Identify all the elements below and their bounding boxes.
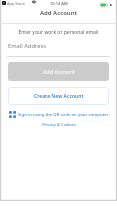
staticText: Create New Account bbox=[34, 93, 84, 100]
staticText: Sign in using the QR code on your comput… bbox=[18, 111, 109, 117]
button[interactable]: QR code sign-in bbox=[0, 109, 117, 119]
button[interactable]: Add Account bbox=[8, 62, 109, 81]
staticText: Email Address bbox=[8, 42, 47, 50]
button[interactable]: Create New Account bbox=[8, 87, 109, 105]
other: Wi-Fi bbox=[32, 1, 36, 4]
other: Battery bbox=[100, 3, 112, 7]
other: QR code sign-in bbox=[9, 111, 16, 118]
staticText: Add Account bbox=[40, 9, 77, 17]
staticText: Enter your work or personal email bbox=[18, 29, 99, 36]
staticText: Add Account bbox=[43, 68, 75, 75]
button[interactable]: Privacy & Cookies bbox=[42, 122, 76, 127]
staticText: App Store bbox=[7, 1, 25, 6]
staticText: 10:14 AM bbox=[50, 1, 68, 6]
